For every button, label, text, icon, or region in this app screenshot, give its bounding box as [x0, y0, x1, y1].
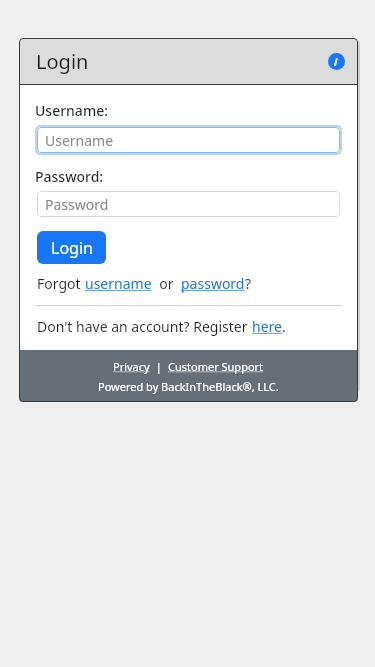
staticText: Login	[36, 48, 89, 75]
button[interactable]: username	[85, 274, 152, 293]
staticText: .	[282, 317, 286, 336]
staticText: ?	[245, 274, 252, 293]
staticText: Username	[45, 131, 114, 150]
staticText: Password:	[35, 167, 104, 186]
button[interactable]: Privacy	[113, 359, 150, 374]
staticText: Login	[51, 237, 93, 259]
button[interactable]: here	[252, 317, 282, 336]
staticText: i	[334, 54, 338, 69]
staticText: |	[150, 359, 168, 374]
button[interactable]: Information	[326, 51, 346, 71]
staticText: Powered by BackInTheBlack®, LLC.	[98, 379, 279, 394]
button[interactable]: Username	[37, 127, 340, 153]
button[interactable]: Login	[37, 231, 106, 264]
button[interactable]: Password	[37, 191, 340, 217]
staticText: Forgot	[37, 274, 85, 293]
button[interactable]: password	[181, 274, 245, 293]
staticText: or	[152, 274, 181, 293]
staticText: Username:	[35, 101, 108, 120]
button[interactable]: Customer Support	[168, 359, 264, 374]
staticText: Password	[45, 195, 109, 214]
staticText: Don't have an account? Register	[37, 317, 252, 336]
